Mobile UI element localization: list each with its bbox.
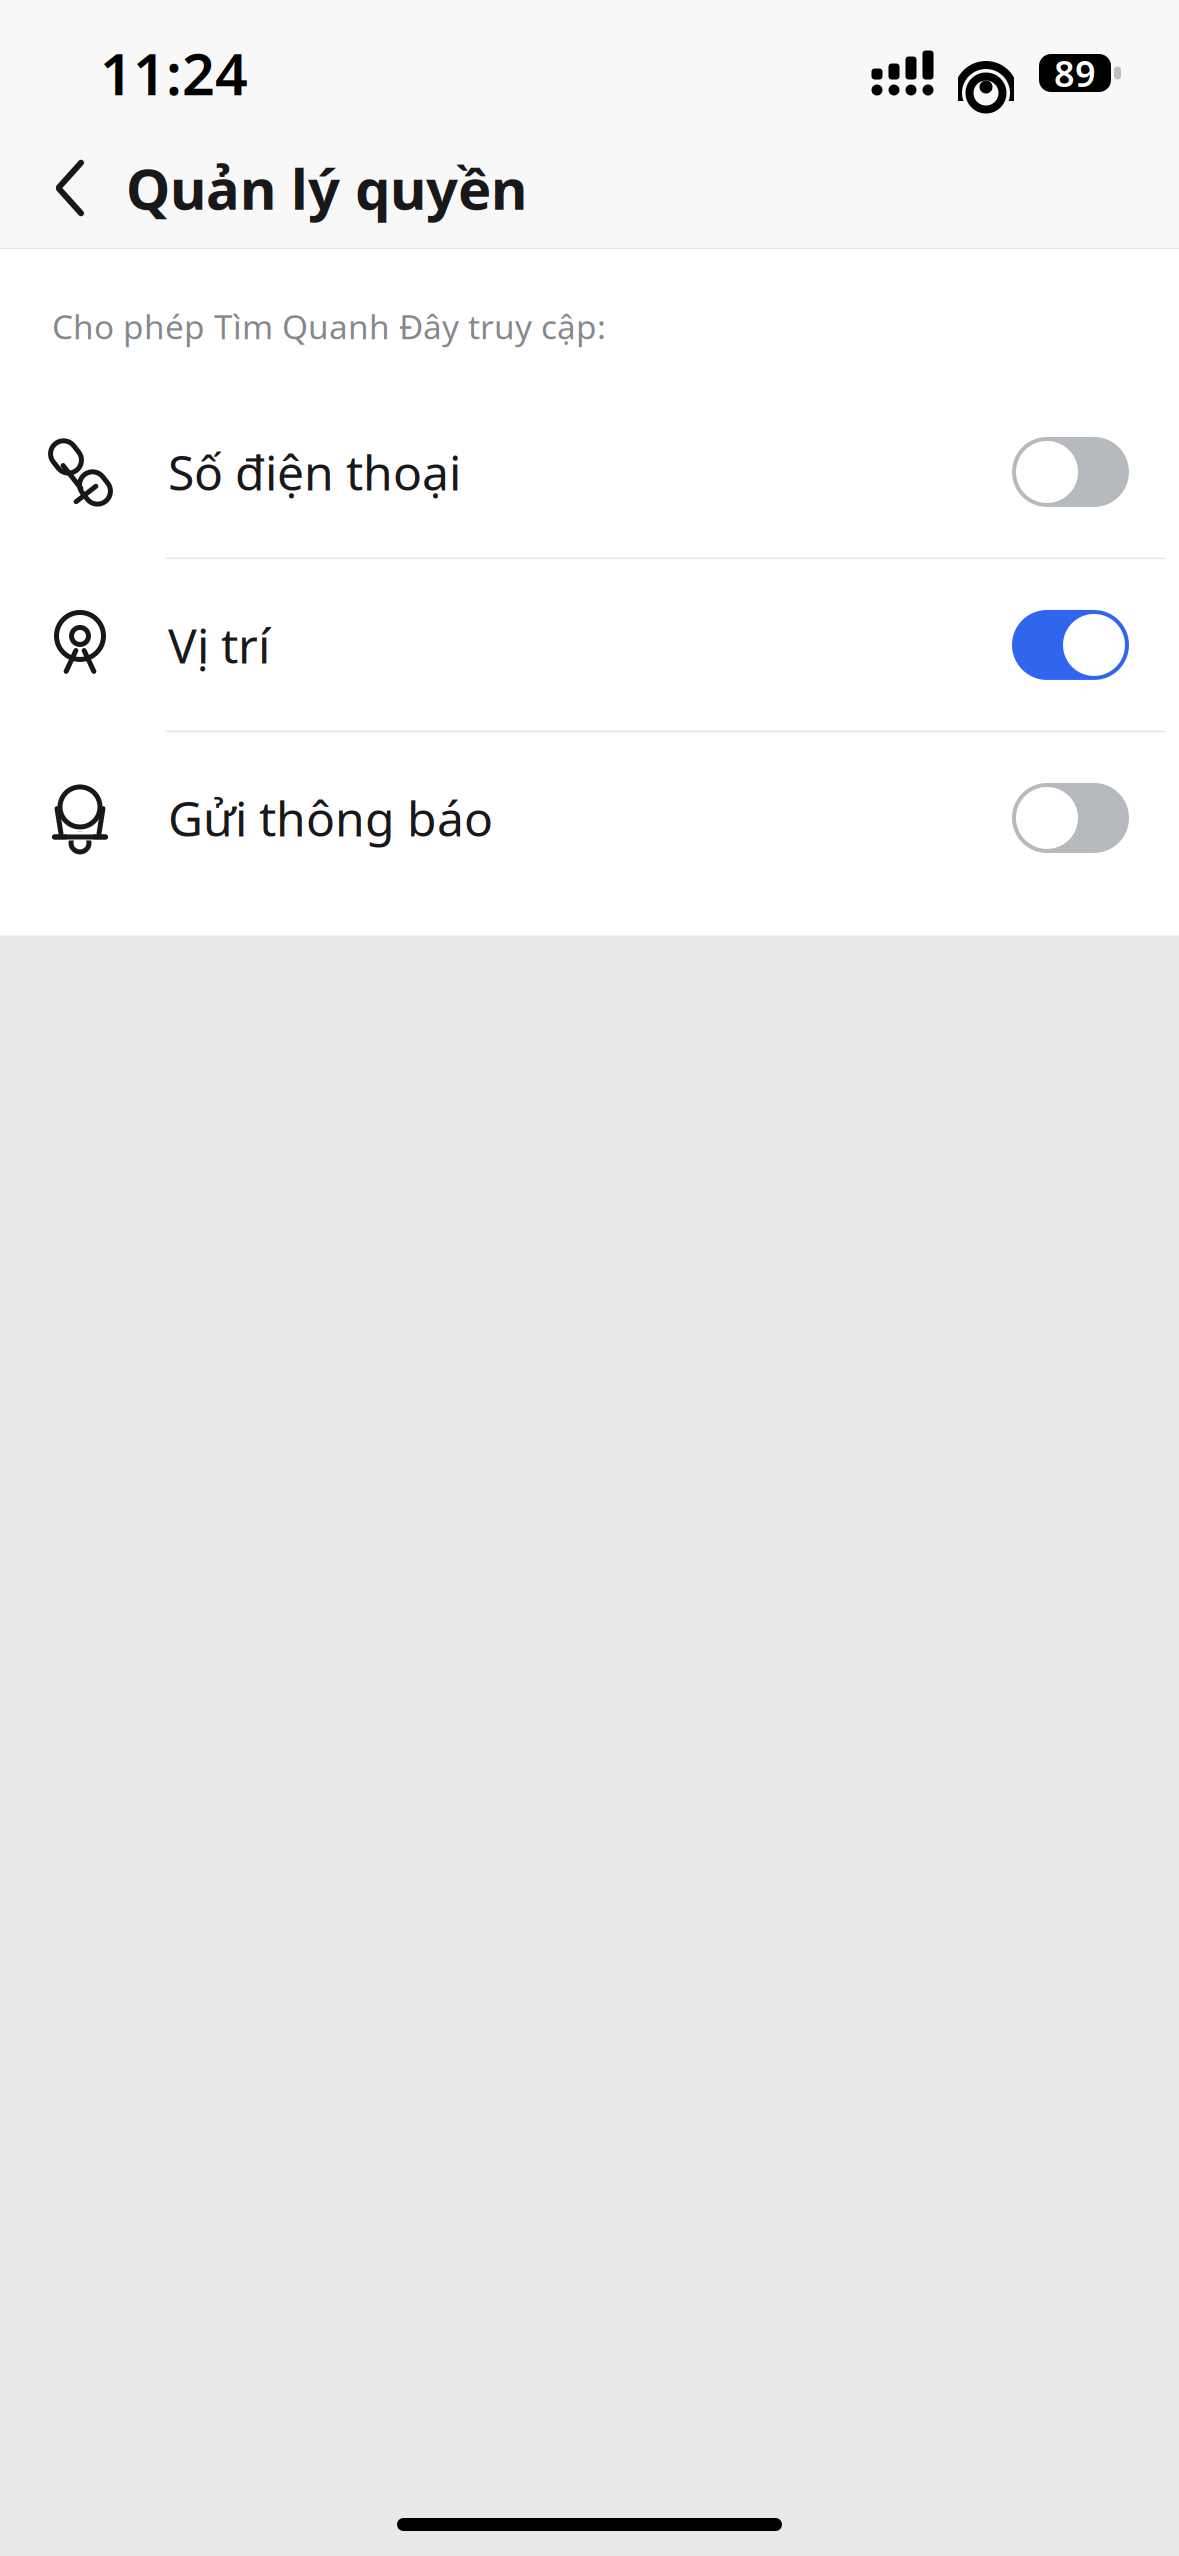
staticText: 11:24 (100, 35, 248, 111)
staticText: Số điện thoại (168, 440, 461, 504)
staticText: Gửi thông báo (168, 786, 493, 850)
button[interactable]: Số điện thoại (0, 386, 1179, 557)
staticText: Quản lý quyền (126, 151, 527, 225)
staticText: 89 (1054, 49, 1096, 97)
button[interactable]: Gửi thông báo (0, 732, 1179, 903)
staticText: Cho phép Tìm Quanh Đây truy cập: (52, 304, 606, 348)
staticText: Vị trí (168, 613, 270, 677)
button[interactable]: Back (22, 140, 118, 236)
button[interactable]: Vị trí (0, 559, 1179, 730)
